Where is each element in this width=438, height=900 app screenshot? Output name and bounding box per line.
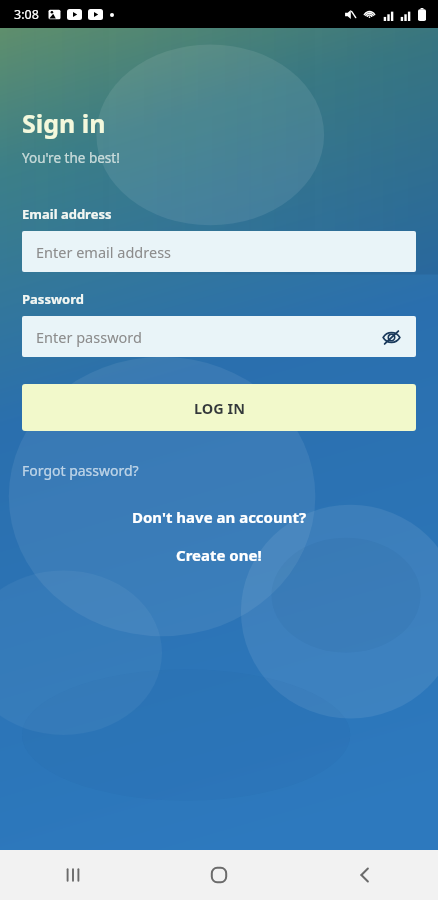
button[interactable]: Show password	[378, 324, 404, 350]
staticText: Enter email address	[36, 242, 172, 262]
staticText: You're the best!	[22, 149, 120, 167]
staticText: Sign in	[22, 106, 106, 140]
button[interactable]: Enter email address	[22, 231, 416, 272]
button[interactable]: Forgot password?	[22, 457, 139, 484]
staticText: Forgot password?	[22, 461, 139, 480]
staticText: LOG IN	[194, 398, 245, 418]
staticText: Password	[22, 290, 84, 308]
staticText: 3:08	[14, 6, 39, 23]
staticText: Don't have an account?	[132, 507, 307, 527]
staticText: Create one!	[176, 545, 262, 565]
button[interactable]: LOG IN	[22, 384, 416, 431]
button[interactable]: Home	[191, 850, 247, 900]
button[interactable]: Recents	[45, 850, 101, 900]
button[interactable]: Create one!	[0, 542, 438, 568]
button[interactable]: Enter password	[22, 316, 416, 357]
staticText: Email address	[22, 205, 112, 223]
staticText: Enter password	[36, 327, 142, 347]
button[interactable]: Don't have an account?	[0, 504, 438, 530]
button[interactable]: Back	[337, 850, 393, 900]
